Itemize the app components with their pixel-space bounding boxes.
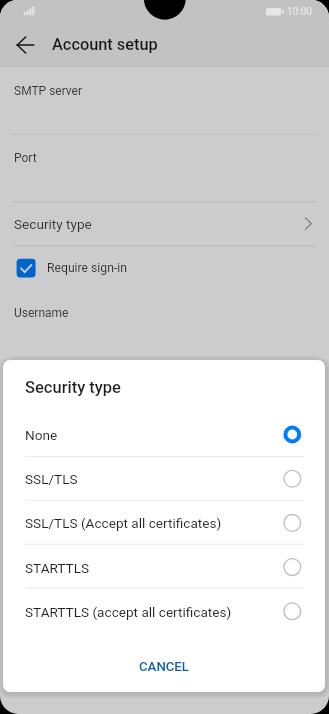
staticText: Port — [14, 151, 37, 165]
staticText: CANCEL — [139, 659, 189, 674]
staticText: 10:00 — [287, 6, 312, 18]
button[interactable] — [3, 501, 325, 545]
button[interactable] — [0, 202, 329, 245]
staticText: None — [25, 427, 58, 443]
button[interactable] — [0, 135, 329, 201]
staticText: Security type — [14, 216, 92, 232]
staticText: STARTTLS — [25, 560, 90, 576]
button[interactable] — [0, 246, 329, 291]
button[interactable] — [0, 67, 329, 134]
staticText: Require sign-in — [47, 261, 127, 275]
button[interactable] — [0, 291, 329, 351]
button[interactable] — [3, 545, 325, 589]
staticText: SSL/TLS — [25, 471, 78, 487]
button[interactable]: Navigate up — [10, 28, 44, 62]
staticText: Security type — [25, 378, 121, 397]
staticText: Username — [14, 306, 69, 320]
button[interactable] — [3, 589, 325, 633]
button[interactable] — [3, 457, 325, 501]
button[interactable]: CANCEL — [3, 633, 325, 692]
button[interactable] — [3, 412, 325, 456]
staticText: Account setup — [52, 35, 158, 54]
staticText: SMTP server — [14, 84, 83, 98]
staticText: STARTTLS (accept all certificates) — [25, 604, 232, 620]
staticText: SSL/TLS (Accept all certificates) — [25, 515, 222, 531]
